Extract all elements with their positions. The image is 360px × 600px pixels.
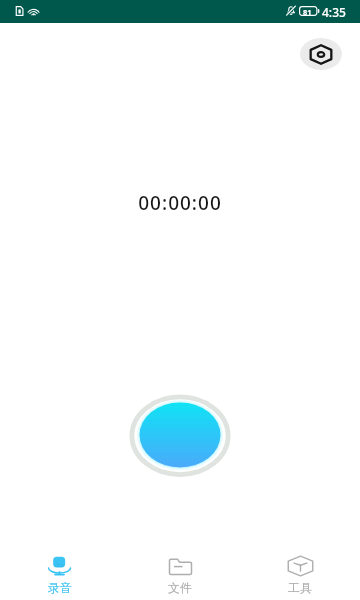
staticText: 4:35 bbox=[322, 4, 346, 20]
staticText: 工具 bbox=[288, 580, 312, 595]
staticText: 录音 bbox=[48, 580, 72, 595]
button[interactable]: Settings bbox=[300, 38, 342, 70]
staticText: 00:00:00 bbox=[0, 190, 360, 216]
button[interactable]: Start recording bbox=[125, 391, 235, 481]
button[interactable]: 文件 bbox=[120, 544, 240, 600]
button[interactable]: 录音 bbox=[0, 544, 120, 600]
button[interactable]: 工具 bbox=[240, 544, 360, 600]
staticText: 文件 bbox=[168, 580, 192, 595]
staticText: 81 bbox=[303, 7, 312, 17]
